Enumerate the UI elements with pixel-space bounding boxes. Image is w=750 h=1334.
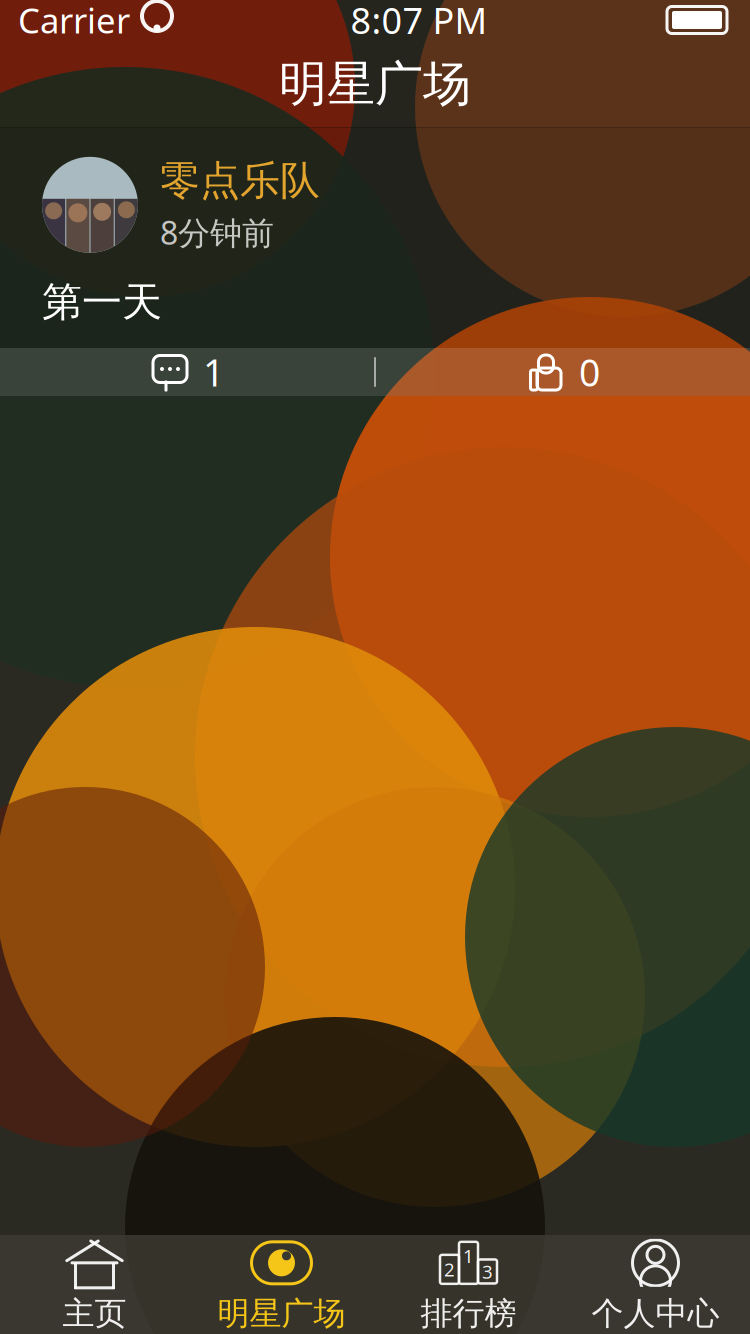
button[interactable]: 2	[375, 1235, 562, 1334]
staticText: 排行榜	[420, 1294, 516, 1333]
staticText: 1	[463, 1243, 474, 1268]
button[interactable]: 明星广场	[188, 1235, 375, 1334]
staticText: 主页	[62, 1294, 126, 1333]
button[interactable]: 个人中心	[562, 1235, 749, 1334]
staticText: 2	[444, 1257, 455, 1282]
button[interactable]: 主页	[1, 1235, 188, 1334]
staticText: 零点乐队	[160, 156, 320, 205]
button[interactable]: 1	[0, 348, 375, 396]
staticText: 0	[579, 347, 600, 397]
staticText: 8:07 PM	[350, 0, 487, 44]
button[interactable]: 0	[375, 348, 750, 396]
staticText: 明星广场	[279, 54, 471, 113]
staticText: 第一天	[42, 278, 162, 327]
staticText: 个人中心	[591, 1294, 719, 1333]
staticText: Carrier	[18, 0, 130, 43]
staticText: 8分钟前	[160, 211, 274, 254]
staticText: 3	[482, 1259, 493, 1284]
staticText: 1	[203, 347, 224, 397]
staticText: 明星广场	[217, 1294, 345, 1333]
